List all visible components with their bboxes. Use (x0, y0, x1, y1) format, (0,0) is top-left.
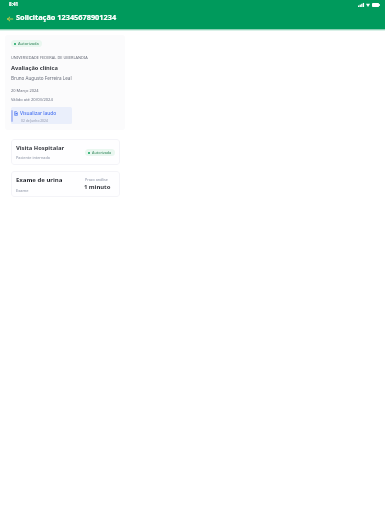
button[interactable]: Voltar (3, 11, 17, 25)
staticText: Exame (16, 188, 29, 193)
staticText: 02 de Junho 2024 (21, 118, 48, 122)
button[interactable]: Autorizada (5, 35, 125, 130)
staticText: UNIVERSIDADE FEDERAL DE UBERLANDIA (11, 55, 88, 60)
staticText: Autorizada (18, 41, 39, 46)
staticText: Avaliação clínica (11, 64, 58, 72)
staticText: 1 minuto (84, 183, 111, 191)
staticText: 8:41 (9, 1, 19, 7)
staticText: Visualizar laudo (20, 110, 57, 117)
staticText: Autorizada (92, 150, 112, 155)
button[interactable]: Visita Hospitalar (11, 139, 120, 165)
staticText: Bruno Augusto Ferreira Leal (11, 75, 72, 81)
staticText: Paciente internado (16, 155, 51, 160)
staticText: 20 Março 2024 (11, 88, 39, 93)
button[interactable]: Visualizar laudo (11, 107, 72, 124)
staticText: Exame de urina (16, 176, 63, 184)
staticText: Prazo análise (85, 177, 108, 182)
staticText: Visita Hospitalar (16, 144, 65, 152)
staticText: Solicitação 12345678901234 (16, 12, 117, 22)
staticText: Válido até 20/03/2024 (11, 97, 53, 103)
button[interactable]: Exame de urina (11, 171, 120, 197)
